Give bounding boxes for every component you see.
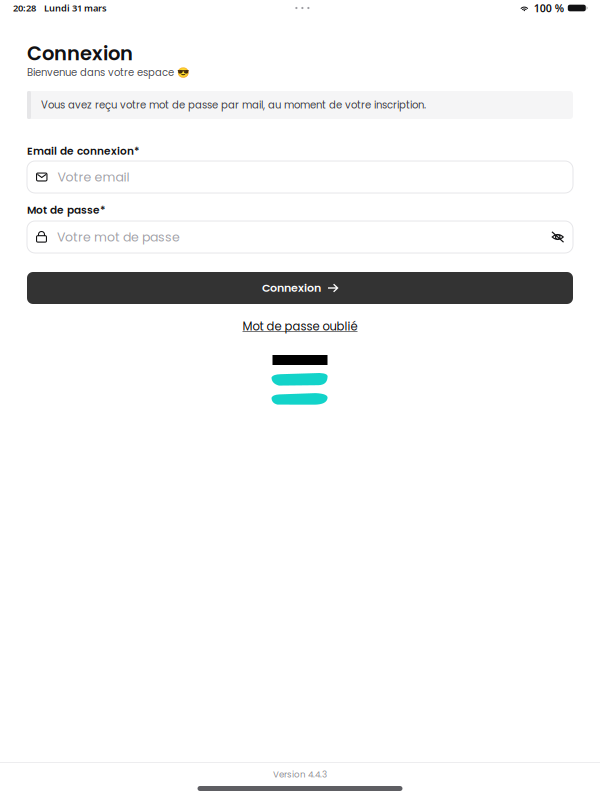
staticText: 100 % bbox=[534, 1, 564, 15]
staticText: Votre mot de passe bbox=[57, 228, 180, 246]
staticText: Connexion bbox=[27, 40, 133, 67]
button[interactable]: Afficher le mot de passe bbox=[548, 224, 568, 250]
button[interactable]: Connexion bbox=[27, 272, 573, 304]
staticText: Vous avez reçu votre mot de passe par ma… bbox=[41, 98, 426, 112]
staticText: Connexion bbox=[262, 280, 321, 296]
staticText: Mot de passe oublié bbox=[242, 318, 357, 335]
staticText: Mot de passe* bbox=[27, 203, 105, 217]
staticText: Email de connexion* bbox=[27, 144, 139, 158]
staticText: Lundi 31 mars bbox=[44, 2, 107, 14]
staticText: Bienvenue dans votre espace 😎 bbox=[27, 65, 189, 79]
button[interactable]: Mot de passe oublié bbox=[242, 320, 357, 333]
staticText: 20:28 bbox=[13, 2, 36, 14]
staticText: Version 4.4.3 bbox=[273, 768, 327, 780]
staticText: Votre email bbox=[57, 168, 129, 186]
